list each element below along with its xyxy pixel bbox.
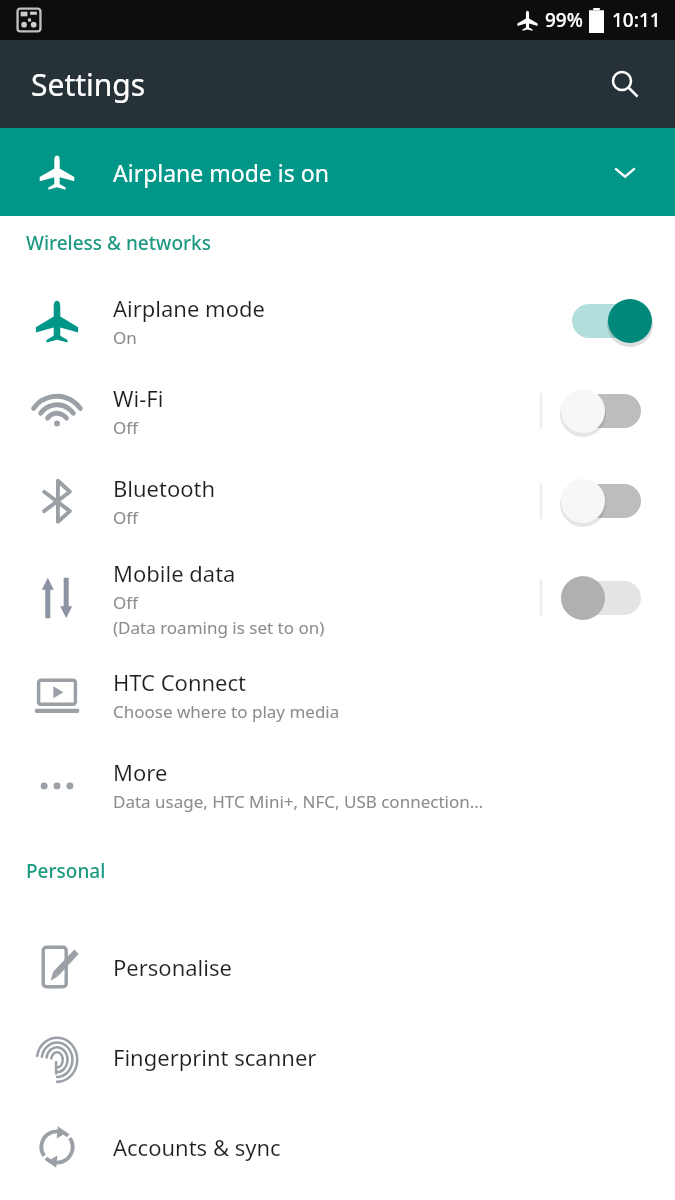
button[interactable]: Accounts & sync	[0, 1102, 675, 1192]
staticText: Bluetooth	[113, 473, 216, 503]
staticText: Wireless & networks	[26, 230, 211, 256]
button[interactable]: Bluetooth	[0, 456, 675, 546]
button[interactable]: Toggle	[555, 383, 655, 439]
button[interactable]: Airplane mode is on	[0, 128, 675, 216]
staticText: Data usage, HTC Mini+, NFC, USB connecti…	[113, 790, 484, 813]
staticText: HTC Connect	[113, 667, 247, 697]
button[interactable]: HTC Connect	[0, 650, 675, 740]
staticText: (Data roaming is set to on)	[113, 616, 325, 639]
staticText: Fingerprint scanner	[113, 1042, 317, 1072]
staticText: 10:11	[612, 7, 661, 33]
button[interactable]: Wi-Fi	[0, 366, 675, 456]
button[interactable]: Airplane mode toggle	[550, 293, 660, 349]
staticText: Choose where to play media	[113, 700, 340, 723]
button[interactable]: Fingerprint scanner	[0, 1012, 675, 1102]
staticText: Off	[113, 506, 138, 529]
button[interactable]: More	[0, 740, 675, 830]
button[interactable]: Search	[599, 58, 651, 110]
staticText: Off	[113, 591, 138, 614]
button[interactable]: Mobile data	[0, 546, 675, 650]
staticText: Personal	[26, 858, 106, 884]
staticText: Settings	[31, 64, 146, 105]
staticText: Personalise	[113, 952, 232, 982]
staticText: Airplane mode	[113, 293, 265, 323]
staticText: Off	[113, 416, 138, 439]
button[interactable]: Mobile data toggle	[555, 570, 655, 626]
button[interactable]: Toggle	[555, 473, 655, 529]
button[interactable]: Airplane mode	[0, 276, 675, 366]
staticText: 99%	[545, 7, 583, 33]
button[interactable]: Personalise	[0, 922, 675, 1012]
staticText: Mobile data	[113, 558, 236, 588]
staticText: Accounts & sync	[113, 1132, 281, 1162]
staticText: Airplane mode is on	[113, 157, 329, 188]
staticText: More	[113, 757, 168, 787]
staticText: Wi-Fi	[113, 383, 164, 413]
staticText: On	[113, 326, 137, 349]
